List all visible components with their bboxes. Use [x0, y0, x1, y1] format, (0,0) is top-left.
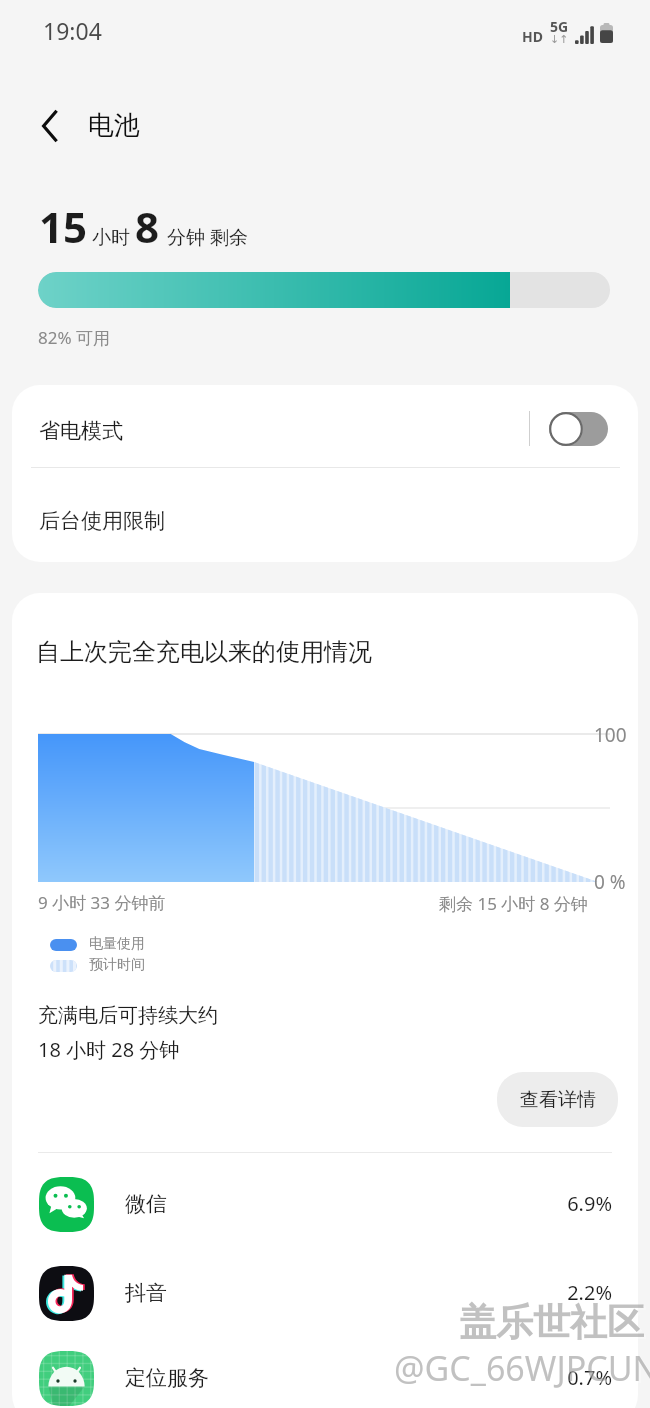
staticText: 15: [39, 198, 88, 255]
staticText: 小时: [92, 226, 130, 250]
staticText: 电量使用: [89, 935, 145, 953]
button[interactable]: 抖音: [12, 1266, 638, 1355]
button[interactable]: Power saving mode toggle: [549, 412, 608, 446]
staticText: 100: [594, 722, 627, 748]
button[interactable]: 微信: [12, 1177, 638, 1266]
staticText: 19:04: [43, 15, 102, 46]
staticText: 盖乐世社区: [461, 1301, 646, 1348]
staticText: ↓↑: [550, 33, 569, 46]
staticText: 0 %: [594, 869, 626, 895]
staticText: 分钟 剩余: [167, 224, 248, 250]
button[interactable]: 定位服务: [12, 1351, 638, 1408]
staticText: 6.9%: [12, 1190, 612, 1217]
staticText: 定位服务: [125, 1365, 209, 1391]
button[interactable]: 省电模式: [12, 390, 638, 472]
staticText: 18 小时 28 分钟: [38, 1036, 180, 1063]
button[interactable]: 查看详情: [497, 1072, 618, 1127]
staticText: @GC_66WJPCUN: [396, 1347, 650, 1393]
staticText: 查看详情: [520, 1088, 596, 1112]
staticText: 2.2%: [12, 1279, 612, 1306]
staticText: 盖乐世社区: [459, 1299, 644, 1346]
staticText: 抖音: [125, 1280, 167, 1306]
staticText: 电池: [88, 109, 140, 142]
staticText: 8: [135, 198, 160, 255]
staticText: 9 小时 33 分钟前: [38, 891, 166, 914]
staticText: 后台使用限制: [39, 508, 165, 534]
button[interactable]: 后台使用限制: [12, 474, 638, 562]
staticText: 剩余 15 小时 8 分钟: [439, 892, 588, 915]
staticText: 82% 可用: [38, 326, 110, 349]
staticText: 自上次完全充电以来的使用情况: [36, 637, 372, 667]
staticText: 5G: [550, 17, 569, 36]
staticText: 微信: [125, 1191, 167, 1217]
staticText: @GC_66WJPCUN: [394, 1345, 650, 1391]
staticText: 省电模式: [39, 418, 123, 444]
staticText: 0.7%: [12, 1364, 612, 1391]
staticText: 预计时间: [89, 956, 145, 974]
button[interactable]: Back: [29, 103, 75, 149]
staticText: 充满电后可持续大约: [38, 1003, 218, 1028]
staticText: HD: [522, 27, 543, 46]
